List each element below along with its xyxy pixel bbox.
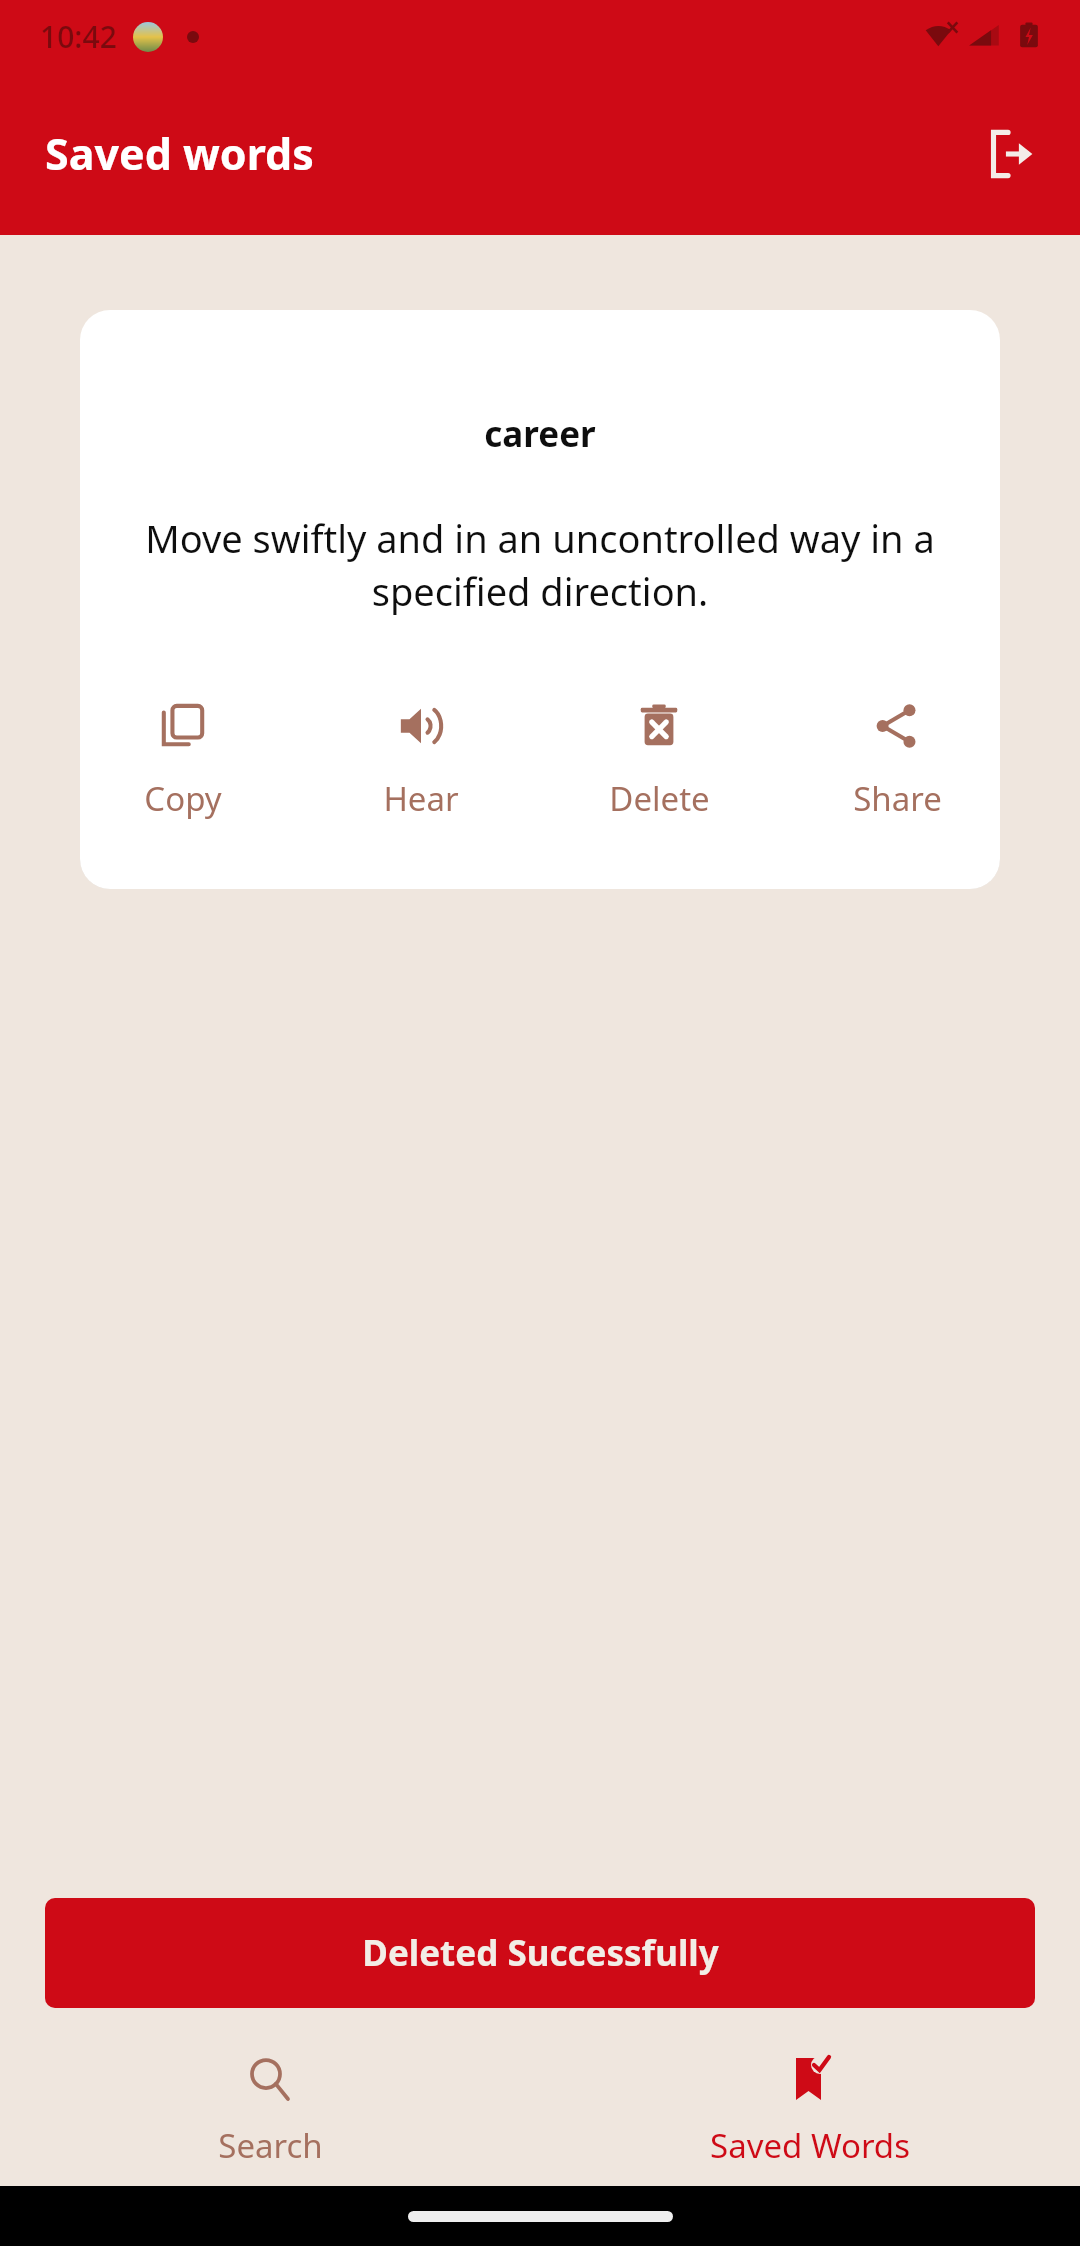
button[interactable]: career xyxy=(80,310,1000,889)
staticText: 10:42 xyxy=(40,16,117,57)
staticText: Move swiftly and in an uncontrolled way … xyxy=(110,512,970,618)
button[interactable]: Search xyxy=(0,2036,540,2186)
staticText: Saved words xyxy=(45,124,314,183)
button[interactable]: Delete xyxy=(584,696,734,827)
button[interactable]: Log out xyxy=(964,111,1050,197)
button[interactable]: Hear xyxy=(346,696,496,827)
button[interactable]: Saved Words xyxy=(540,2036,1080,2186)
staticText: Share xyxy=(853,776,942,821)
staticText: Hear xyxy=(383,776,459,821)
staticText: Saved Words xyxy=(710,2123,910,2168)
staticText: career xyxy=(484,410,596,458)
staticText: Deleted Successfully xyxy=(362,1929,719,1977)
staticText: Search xyxy=(218,2123,323,2168)
button[interactable]: Copy xyxy=(108,696,258,827)
button[interactable]: Share xyxy=(822,696,972,827)
staticText: Copy xyxy=(144,776,222,821)
staticText: Delete xyxy=(609,776,710,821)
button[interactable]: Deleted Successfully xyxy=(45,1898,1035,2008)
